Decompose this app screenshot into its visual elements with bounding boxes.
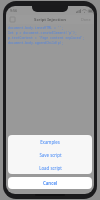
- staticText: Done: [81, 17, 91, 22]
- button[interactable]: Cancel: [8, 177, 92, 189]
- staticText: document.body.innerHTML = '';: [8, 26, 64, 30]
- button[interactable]: Examples: [8, 135, 92, 148]
- button[interactable]: Done: [81, 17, 91, 22]
- staticText: Save script: [39, 152, 62, 158]
- button[interactable]: Save script: [8, 148, 92, 161]
- button[interactable]: Menu: [9, 16, 16, 23]
- staticText: document.body.appendChild(p);: [8, 41, 64, 45]
- staticText: Load script: [39, 165, 62, 171]
- staticText: Cancel: [43, 180, 58, 186]
- staticText: Script Injection: [34, 17, 66, 23]
- staticText: 9:56: [10, 8, 18, 13]
- staticText: Examples: [40, 139, 60, 145]
- button[interactable]: Load script: [8, 161, 92, 174]
- staticText: p.textContent = 'Page content replaced';: [8, 36, 85, 40]
- staticText: let p = document.createElement('p');: [8, 31, 77, 35]
